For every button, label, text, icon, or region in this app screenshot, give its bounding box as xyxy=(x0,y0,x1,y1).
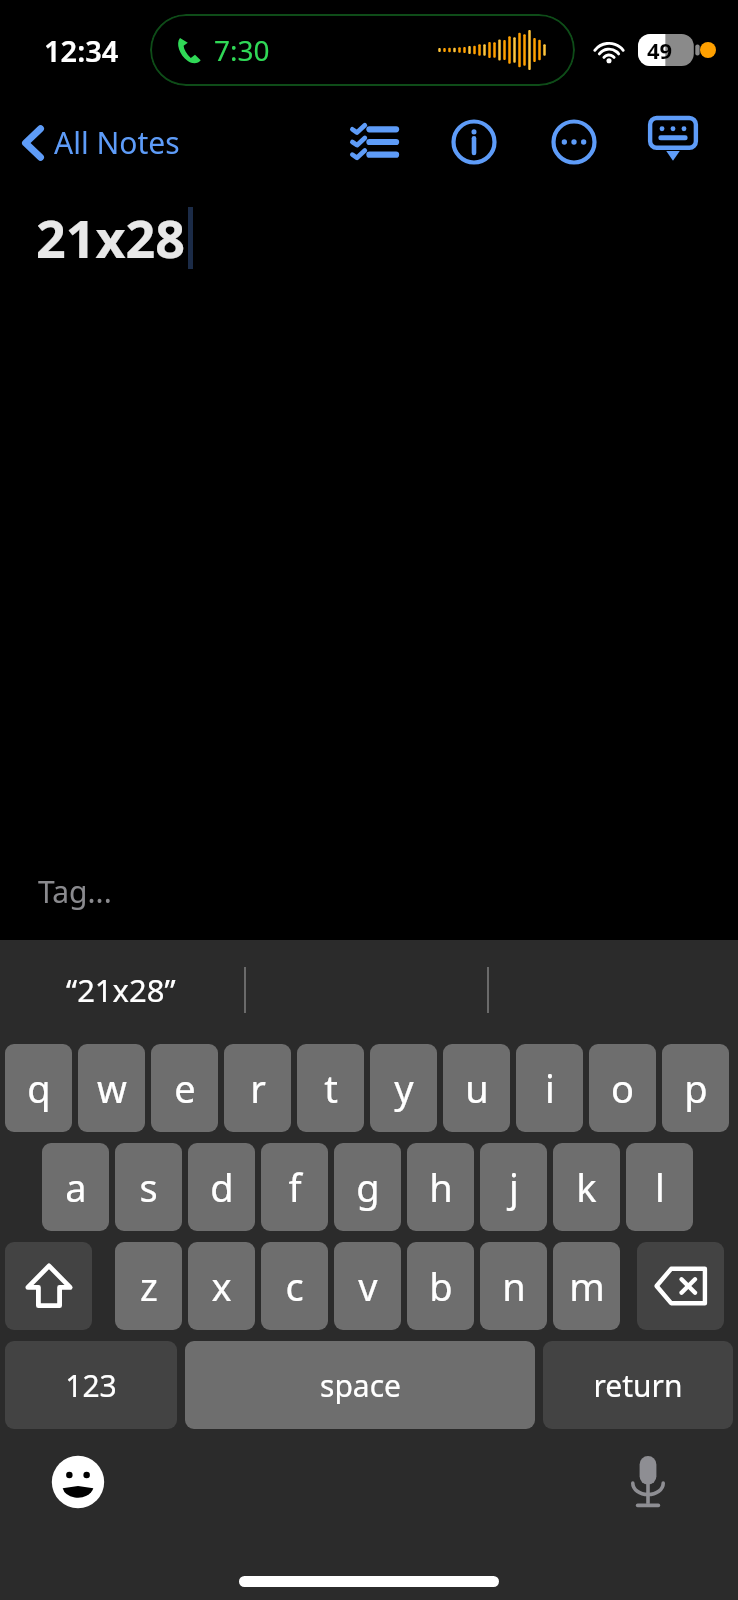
staticText: q xyxy=(27,1062,51,1114)
button[interactable]: “21x28” xyxy=(66,969,176,1011)
staticText: p xyxy=(684,1062,708,1114)
button[interactable]: z xyxy=(115,1242,182,1330)
staticText: All Notes xyxy=(54,122,180,163)
button[interactable]: space xyxy=(185,1341,535,1429)
button[interactable]: x xyxy=(188,1242,255,1330)
staticText: w xyxy=(97,1062,127,1114)
staticText: 49 xyxy=(647,35,673,65)
staticText: 7:30 xyxy=(214,31,270,69)
button[interactable]: c xyxy=(261,1242,328,1330)
button[interactable]: All Notes xyxy=(14,116,188,169)
button[interactable]: i xyxy=(516,1044,583,1132)
staticText: space xyxy=(320,1365,401,1406)
button[interactable]: y xyxy=(370,1044,437,1132)
button[interactable]: b xyxy=(407,1242,474,1330)
staticText: i xyxy=(545,1062,555,1114)
button[interactable]: p xyxy=(662,1044,729,1132)
staticText: s xyxy=(139,1161,158,1213)
staticText: y xyxy=(394,1062,414,1114)
staticText: a xyxy=(65,1161,87,1213)
staticText: m xyxy=(569,1260,605,1312)
button[interactable]: j xyxy=(480,1143,547,1231)
button[interactable]: s xyxy=(115,1143,182,1231)
staticText: 123 xyxy=(65,1365,117,1406)
button[interactable]: Backspace xyxy=(637,1242,724,1330)
staticText: o xyxy=(611,1062,634,1114)
button[interactable]: a xyxy=(42,1143,109,1231)
button[interactable]: g xyxy=(334,1143,401,1231)
button[interactable]: e xyxy=(151,1044,218,1132)
button[interactable]: o xyxy=(589,1044,656,1132)
staticText: c xyxy=(285,1260,304,1312)
staticText: f xyxy=(288,1161,302,1213)
button[interactable]: Hide keyboard xyxy=(636,110,710,174)
staticText: x xyxy=(211,1260,232,1312)
button[interactable]: k xyxy=(553,1143,620,1231)
staticText: t xyxy=(324,1062,338,1114)
button[interactable]: Info xyxy=(440,108,508,176)
button[interactable]: t xyxy=(297,1044,364,1132)
staticText: u xyxy=(465,1062,489,1114)
button[interactable]: w xyxy=(78,1044,145,1132)
button[interactable]: v xyxy=(334,1242,401,1330)
staticText: l xyxy=(655,1161,665,1213)
staticText: n xyxy=(502,1260,526,1312)
button[interactable]: 123 xyxy=(5,1341,177,1429)
button[interactable]: d xyxy=(188,1143,255,1231)
staticText: g xyxy=(356,1161,380,1213)
staticText: return xyxy=(593,1365,683,1406)
staticText: 12:34 xyxy=(44,31,119,70)
button[interactable]: Dictate xyxy=(614,1448,682,1516)
button[interactable]: Checklist xyxy=(338,112,410,172)
button[interactable]: More options xyxy=(540,108,608,176)
button[interactable]: Emoji xyxy=(44,1448,112,1516)
staticText: d xyxy=(210,1161,234,1213)
button[interactable]: u xyxy=(443,1044,510,1132)
button[interactable]: h xyxy=(407,1143,474,1231)
staticText: r xyxy=(250,1062,266,1114)
staticText: h xyxy=(429,1161,453,1213)
staticText: e xyxy=(174,1062,196,1114)
staticText: v xyxy=(358,1260,378,1312)
button[interactable]: Shift xyxy=(5,1242,92,1330)
button[interactable]: Tag... xyxy=(38,871,112,912)
button[interactable]: r xyxy=(224,1044,291,1132)
button[interactable]: n xyxy=(480,1242,547,1330)
button[interactable]: m xyxy=(553,1242,620,1330)
staticText: b xyxy=(429,1260,453,1312)
staticText: 21x28 xyxy=(36,202,186,273)
button[interactable]: f xyxy=(261,1143,328,1231)
button[interactable]: l xyxy=(626,1143,693,1231)
staticText: k xyxy=(576,1161,597,1213)
staticText: z xyxy=(140,1260,158,1312)
button[interactable]: Active call 7:30 xyxy=(150,14,575,86)
staticText: j xyxy=(509,1161,519,1213)
button[interactable]: q xyxy=(5,1044,72,1132)
button[interactable]: return xyxy=(543,1341,733,1429)
